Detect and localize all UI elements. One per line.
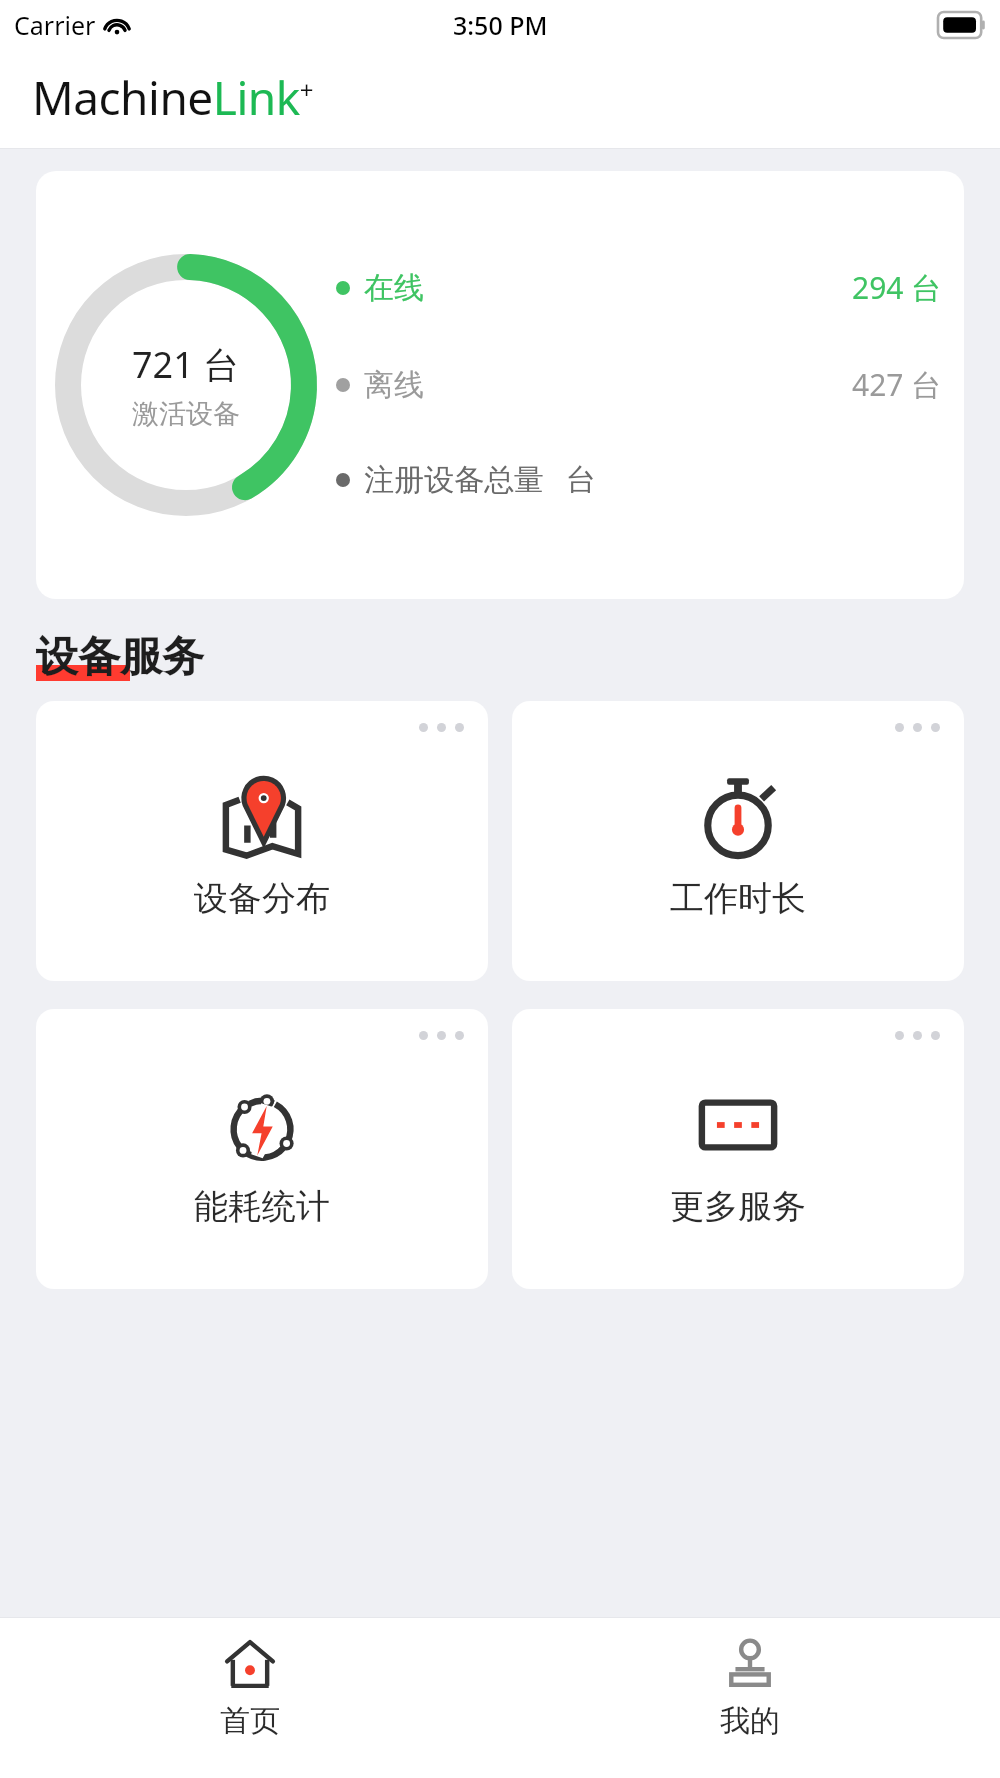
staticText: 721 台: [132, 340, 240, 389]
staticText: MachineLink+: [32, 66, 313, 129]
button[interactable]: 首页: [0, 1618, 500, 1778]
staticText: 离线: [364, 366, 424, 404]
staticText: 工作时长: [670, 877, 806, 920]
staticText: 3:50 PM: [453, 8, 548, 42]
staticText: 设备分布: [194, 877, 330, 920]
staticText: 注册设备总量: [364, 461, 544, 499]
staticText: 能耗统计: [194, 1185, 330, 1228]
staticText: 427 台: [852, 364, 942, 405]
button[interactable]: 设备分布: [36, 701, 488, 981]
staticText: 在线: [364, 269, 424, 307]
staticText: 294 台: [852, 267, 942, 308]
staticText: 首页: [220, 1702, 280, 1740]
button[interactable]: 更多服务: [512, 1009, 964, 1289]
staticText: 更多服务: [670, 1185, 806, 1228]
button[interactable]: 工作时长: [512, 701, 964, 981]
button[interactable]: 721 台: [36, 171, 964, 599]
button[interactable]: 能耗统计: [36, 1009, 488, 1289]
staticText: 激活设备: [132, 397, 240, 431]
button[interactable]: 我的: [500, 1618, 1000, 1778]
staticText: Carrier: [14, 8, 96, 42]
staticText: 台: [566, 461, 596, 499]
staticText: 设备服务: [36, 631, 204, 684]
staticText: 我的: [720, 1702, 780, 1740]
